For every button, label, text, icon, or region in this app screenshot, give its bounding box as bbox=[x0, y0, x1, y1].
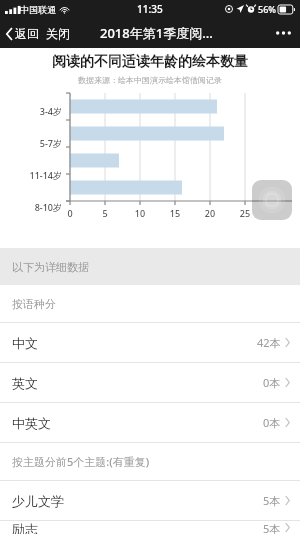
staticText: 8-10岁 bbox=[0, 201, 62, 213]
staticText: 3-4岁 bbox=[0, 105, 62, 117]
staticText: 42本 bbox=[257, 335, 281, 350]
button[interactable]: 按主题分前5个主题:(有重复) bbox=[0, 443, 300, 480]
staticText: 励志 bbox=[12, 521, 38, 534]
button[interactable]: More options bbox=[267, 23, 300, 43]
button[interactable]: 中文 bbox=[0, 323, 300, 362]
button[interactable]: Assistive touch bbox=[252, 180, 292, 220]
staticText: 少儿文学 bbox=[12, 493, 64, 509]
staticText: 56% bbox=[258, 3, 276, 15]
staticText: 0本 bbox=[263, 375, 281, 390]
staticText: 15 bbox=[165, 207, 185, 219]
staticText: 0本 bbox=[263, 415, 281, 430]
staticText: 按语种分 bbox=[12, 297, 56, 311]
button[interactable]: 中英文 bbox=[0, 403, 300, 442]
button[interactable]: 以下为详细数据 bbox=[0, 248, 300, 285]
staticText: 中英文 bbox=[12, 415, 51, 431]
button[interactable]: 励志 bbox=[0, 521, 300, 534]
staticText: 中国联通 bbox=[20, 4, 56, 15]
staticText: 5本 bbox=[263, 521, 281, 534]
staticText: 2018年第1季度阅... bbox=[100, 24, 213, 42]
staticText: 10 bbox=[130, 207, 150, 219]
button[interactable]: 返回 bbox=[0, 22, 43, 45]
staticText: 11:35 bbox=[137, 2, 163, 16]
staticText: 0 bbox=[60, 207, 80, 219]
staticText: 按主题分前5个主题:(有重复) bbox=[12, 454, 150, 469]
button[interactable]: 英文 bbox=[0, 363, 300, 402]
staticText: 11-14岁 bbox=[0, 169, 62, 181]
staticText: 20 bbox=[200, 207, 220, 219]
staticText: 5-7岁 bbox=[0, 137, 62, 149]
staticText: 数据来源：绘本中国演示绘本馆借阅记录 bbox=[0, 75, 300, 85]
staticText: 阅读的不同适读年龄的绘本数量 bbox=[0, 53, 300, 71]
staticText: 以下为详细数据 bbox=[12, 260, 89, 274]
staticText: 5 bbox=[95, 207, 115, 219]
staticText: 返回 bbox=[15, 26, 39, 41]
staticText: 5本 bbox=[263, 493, 281, 508]
staticText: 25 bbox=[235, 207, 255, 219]
button[interactable]: 关闭 bbox=[43, 21, 73, 46]
button[interactable]: 少儿文学 bbox=[0, 481, 300, 520]
button[interactable]: 按语种分 bbox=[0, 285, 300, 322]
staticText: 中文 bbox=[12, 335, 38, 351]
staticText: 英文 bbox=[12, 375, 38, 391]
